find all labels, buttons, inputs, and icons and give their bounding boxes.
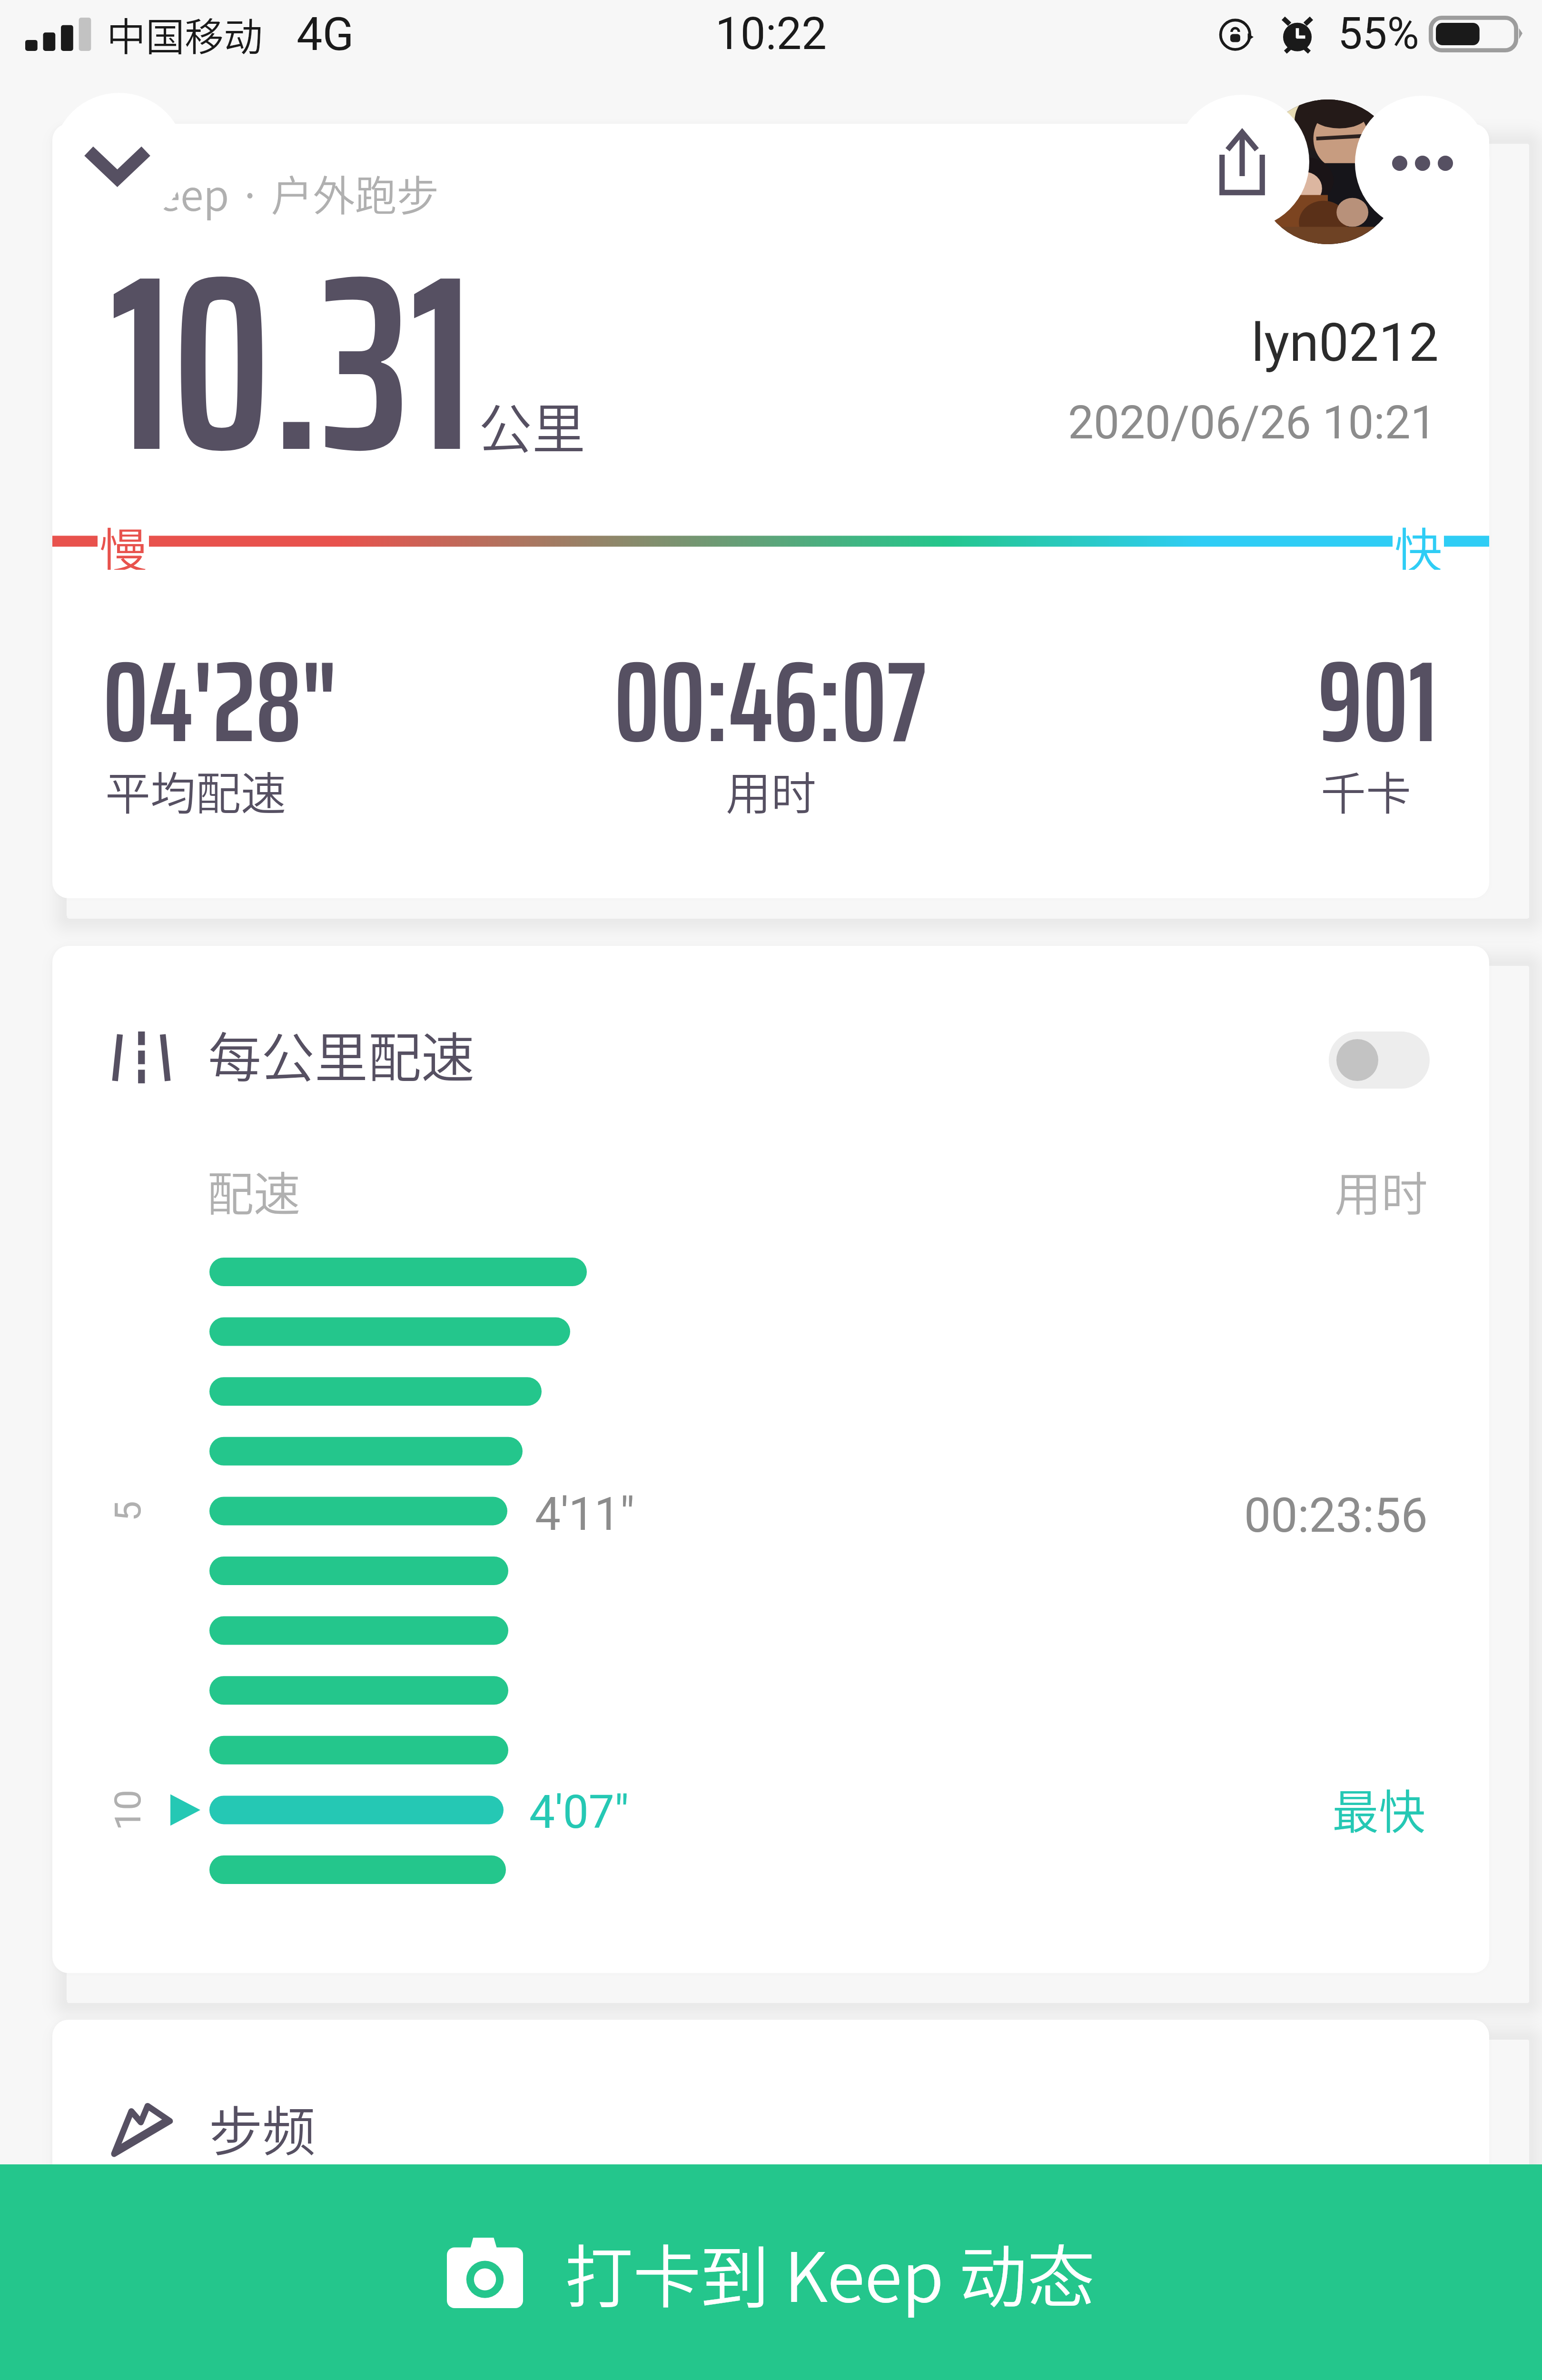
staticText: lyn0212 xyxy=(1251,311,1439,374)
staticText: 10 xyxy=(106,1790,149,1830)
staticText: 901 xyxy=(1318,612,1438,792)
staticText: 7920 xyxy=(426,2291,591,2380)
staticText: 最快 xyxy=(1332,1775,1426,1842)
staticText: 4G xyxy=(297,7,354,61)
staticText: 步频 xyxy=(209,2089,316,2166)
staticText: 千卡 xyxy=(1321,758,1412,823)
staticText: 平均配速 xyxy=(105,758,287,823)
staticText: 中国移动 xyxy=(107,6,263,62)
staticText: 00:46:07 xyxy=(614,612,927,792)
staticText: 总步数 xyxy=(425,2243,575,2315)
button[interactable]: More options xyxy=(1355,96,1490,230)
staticText: 快 xyxy=(1394,513,1442,570)
button[interactable]: Share xyxy=(1175,95,1309,229)
staticText: 用时 xyxy=(726,758,817,823)
staticText: Keep · 户外跑步 xyxy=(131,162,439,223)
staticText: 00:23:56 xyxy=(1244,1487,1428,1543)
staticText: 2020/06/26 10:21 xyxy=(1068,396,1436,450)
staticText: 平均步频 xyxy=(876,2243,1077,2315)
staticText: 55% xyxy=(1338,8,1419,59)
staticText: 4'07" xyxy=(529,1785,629,1839)
staticText: 5 xyxy=(107,1501,149,1521)
staticText: 公里 xyxy=(479,387,585,464)
staticText: 4'11" xyxy=(535,1487,635,1541)
button[interactable]: Profile xyxy=(1255,99,1400,244)
button[interactable] xyxy=(1329,1031,1430,1089)
staticText: 慢 xyxy=(99,513,147,570)
button[interactable]: Collapse xyxy=(52,93,186,226)
staticText: 171 xyxy=(877,2291,970,2380)
staticText: 配速 xyxy=(207,1157,301,1224)
staticText: 用时 xyxy=(1334,1157,1428,1224)
staticText: 每公里配速 xyxy=(208,1015,474,1092)
staticText: 10:22 xyxy=(715,8,827,60)
staticText: 10.31 xyxy=(109,168,473,557)
staticText: 打卡到 Keep 动态 xyxy=(565,2223,1096,2321)
staticText: 04'28" xyxy=(103,612,337,792)
button[interactable]: 打卡到 Keep 动态 xyxy=(0,2164,1542,2380)
